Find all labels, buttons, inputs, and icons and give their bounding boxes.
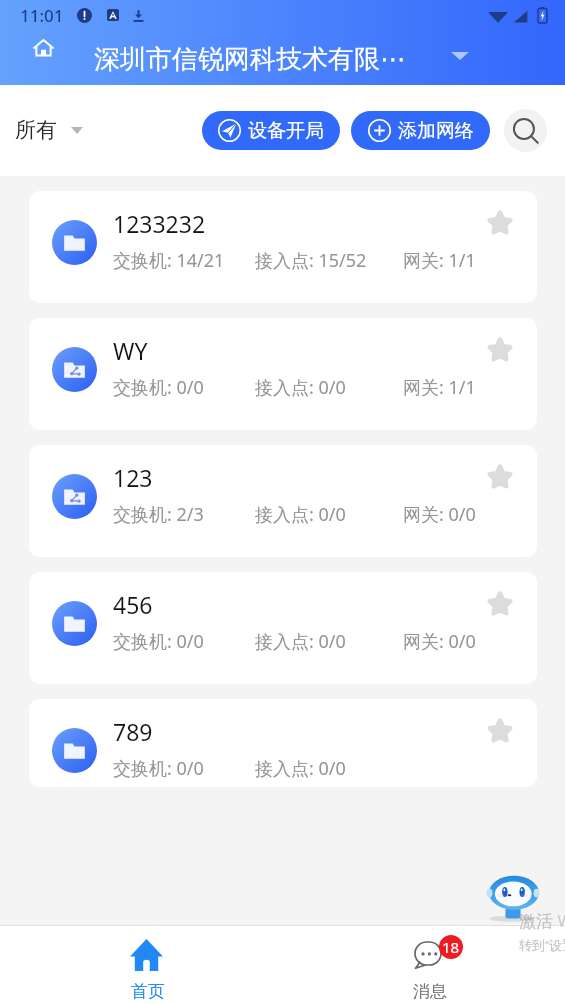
button[interactable]: 18	[382, 926, 478, 1004]
staticText: 11:01	[20, 4, 64, 27]
staticText: 接入点: 0/0	[255, 629, 346, 654]
staticText: 交换机: 0/0	[113, 629, 204, 654]
staticText: 消息	[398, 981, 462, 1002]
staticText: 设备开局	[248, 119, 324, 143]
staticText: 所有	[15, 117, 57, 143]
staticText: WY	[113, 335, 148, 366]
staticText: 网关: 0/0	[403, 629, 476, 654]
staticText: 789	[113, 716, 153, 747]
button[interactable]: Favourite	[479, 583, 521, 625]
staticText: 网关: 0/0	[403, 502, 476, 527]
button[interactable]: 所有	[10, 106, 88, 154]
button[interactable]: 123	[29, 445, 537, 557]
staticText: 18	[442, 937, 460, 957]
staticText: 转到“设置”以激活 Windows。	[519, 936, 565, 954]
button[interactable]: 1233232	[29, 191, 537, 303]
staticText: 激活 Windows	[519, 909, 565, 932]
staticText: 交换机: 14/21	[113, 248, 225, 273]
button[interactable]: Favourite	[479, 329, 521, 371]
staticText: 123	[113, 462, 153, 493]
staticText: 456	[113, 589, 153, 620]
button[interactable]: Switch organisation	[443, 39, 477, 73]
button[interactable]: Search	[504, 109, 547, 152]
button[interactable]: WY	[29, 318, 537, 430]
staticText: 深圳市信锐网科技术有限⋯	[94, 43, 406, 76]
button[interactable]: 设备开局	[202, 111, 340, 150]
staticText: 接入点: 0/0	[255, 375, 346, 400]
staticText: 接入点: 0/0	[255, 756, 346, 781]
button[interactable]: 789	[29, 699, 537, 787]
staticText: 1233232	[113, 208, 206, 239]
button[interactable]: Favourite	[479, 456, 521, 498]
button[interactable]: Favourite	[479, 710, 521, 752]
button[interactable]: Assistant	[486, 872, 540, 926]
staticText: 网关: 1/1	[403, 375, 476, 400]
button[interactable]: Home	[26, 31, 60, 65]
button[interactable]: 添加网络	[351, 111, 490, 150]
staticText: 接入点: 0/0	[255, 502, 346, 527]
button[interactable]: 首页	[100, 926, 196, 1004]
button[interactable]: Favourite	[479, 202, 521, 244]
staticText: 网关: 1/1	[403, 248, 476, 273]
button[interactable]: 456	[29, 572, 537, 684]
staticText: 接入点: 15/52	[255, 248, 367, 273]
staticText: 首页	[116, 981, 180, 1002]
staticText: 添加网络	[398, 119, 474, 143]
staticText: 交换机: 0/0	[113, 375, 204, 400]
staticText: 交换机: 2/3	[113, 502, 204, 527]
staticText: 交换机: 0/0	[113, 756, 204, 781]
